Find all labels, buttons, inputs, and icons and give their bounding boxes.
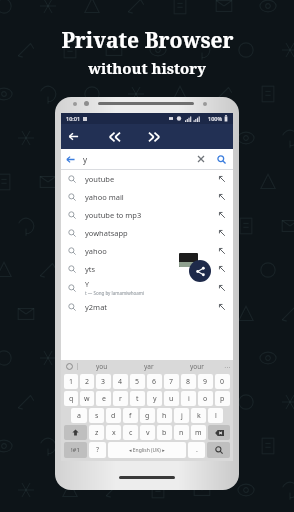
- staticText: youtube: [85, 174, 115, 184]
- staticText: t — Song by lamamiwhoami: [85, 290, 145, 296]
- button[interactable]: d: [106, 408, 121, 423]
- button[interactable]: youtube: [61, 170, 233, 188]
- button[interactable]: n: [174, 425, 189, 440]
- button[interactable]: Search: [214, 152, 228, 166]
- button[interactable]: yar: [125, 360, 173, 373]
- staticText: y: [153, 394, 157, 404]
- button[interactable]: 6: [147, 374, 162, 389]
- staticText: l: [215, 411, 217, 421]
- button[interactable]: s: [89, 408, 104, 423]
- staticText: 3: [101, 377, 106, 387]
- button[interactable]: youtube to mp3: [61, 206, 233, 224]
- button[interactable]: Clear: [194, 152, 208, 166]
- button[interactable]: 4: [113, 374, 128, 389]
- button[interactable]: p: [215, 391, 230, 406]
- button[interactable]: m: [191, 425, 206, 440]
- staticText: q: [69, 394, 74, 404]
- staticText: 8: [186, 377, 191, 387]
- staticText: h: [162, 411, 167, 421]
- staticText: Private Browser: [61, 26, 234, 55]
- button[interactable]: 9: [198, 374, 213, 389]
- button[interactable]: 7: [164, 374, 179, 389]
- button[interactable]: w: [80, 391, 94, 406]
- button[interactable]: k: [191, 408, 206, 423]
- button[interactable]: h: [157, 408, 172, 423]
- button[interactable]: e: [96, 391, 111, 406]
- staticText: you: [96, 362, 108, 371]
- button[interactable]: yahoo: [61, 242, 233, 260]
- button[interactable]: a: [71, 408, 87, 423]
- staticText: m: [195, 428, 202, 438]
- button[interactable]: More suggestions: [221, 360, 233, 373]
- button[interactable]: yowhatsapp: [61, 224, 233, 242]
- button[interactable]: f: [123, 408, 138, 423]
- button[interactable]: ◂ English (UK) ▸: [108, 442, 186, 458]
- button[interactable]: v: [140, 425, 155, 440]
- staticText: .: [196, 445, 198, 455]
- staticText: k: [197, 411, 201, 421]
- button[interactable]: r: [113, 391, 128, 406]
- button[interactable]: g: [140, 408, 155, 423]
- button[interactable]: 2: [80, 374, 94, 389]
- button[interactable]: ?: [89, 442, 106, 458]
- staticText: ◂ English (UK) ▸: [129, 447, 165, 454]
- button[interactable]: j: [174, 408, 189, 423]
- staticText: without history: [88, 58, 206, 78]
- button[interactable]: b: [157, 425, 172, 440]
- button[interactable]: Forward: [141, 124, 166, 149]
- button[interactable]: y: [147, 391, 162, 406]
- button[interactable]: 5: [130, 374, 145, 389]
- staticText: yts: [85, 264, 96, 274]
- button[interactable]: Y: [61, 278, 233, 298]
- button[interactable]: 3: [96, 374, 111, 389]
- button[interactable]: q: [64, 391, 78, 406]
- button[interactable]: 8: [181, 374, 196, 389]
- staticText: 7: [169, 377, 174, 387]
- staticText: d: [111, 411, 116, 421]
- button[interactable]: Share: [189, 260, 211, 282]
- staticText: i: [188, 394, 190, 404]
- button[interactable]: Shift: [64, 425, 87, 440]
- staticText: j: [181, 411, 183, 421]
- button[interactable]: t: [130, 391, 145, 406]
- button[interactable]: z: [89, 425, 104, 440]
- staticText: yowhatsapp: [85, 228, 128, 238]
- button[interactable]: Rewind: [102, 124, 127, 149]
- button[interactable]: u: [164, 391, 179, 406]
- staticText: !#1: [71, 446, 80, 454]
- button[interactable]: you: [78, 360, 125, 373]
- staticText: 1: [69, 377, 74, 387]
- button[interactable]: yahoo mail: [61, 188, 233, 206]
- staticText: y2mat: [85, 302, 108, 312]
- staticText: n: [179, 428, 184, 438]
- staticText: 2: [85, 377, 90, 387]
- button[interactable]: y: [61, 149, 233, 169]
- button[interactable]: o: [198, 391, 213, 406]
- button[interactable]: 1: [64, 374, 78, 389]
- staticText: youtube to mp3: [85, 210, 142, 220]
- staticText: c: [129, 428, 133, 438]
- button[interactable]: Backspace: [208, 425, 230, 440]
- button[interactable]: y2mat: [61, 298, 233, 316]
- button[interactable]: c: [123, 425, 138, 440]
- staticText: y: [83, 154, 88, 165]
- staticText: v: [146, 428, 150, 438]
- button[interactable]: .: [188, 442, 205, 458]
- staticText: 6: [152, 377, 157, 387]
- button[interactable]: l: [208, 408, 223, 423]
- staticText: b: [162, 428, 167, 438]
- button[interactable]: your: [173, 360, 221, 373]
- button[interactable]: x: [106, 425, 121, 440]
- button[interactable]: Search: [207, 442, 230, 458]
- staticText: e: [102, 394, 106, 404]
- staticText: u: [169, 394, 174, 404]
- staticText: f: [129, 411, 132, 421]
- staticText: 4: [118, 377, 123, 387]
- button[interactable]: Back: [61, 124, 86, 149]
- button[interactable]: !#1: [64, 442, 87, 458]
- button[interactable]: i: [181, 391, 196, 406]
- button[interactable]: yts: [61, 260, 233, 278]
- staticText: w: [84, 394, 90, 404]
- button[interactable]: 0: [215, 374, 230, 389]
- staticText: s: [95, 411, 99, 421]
